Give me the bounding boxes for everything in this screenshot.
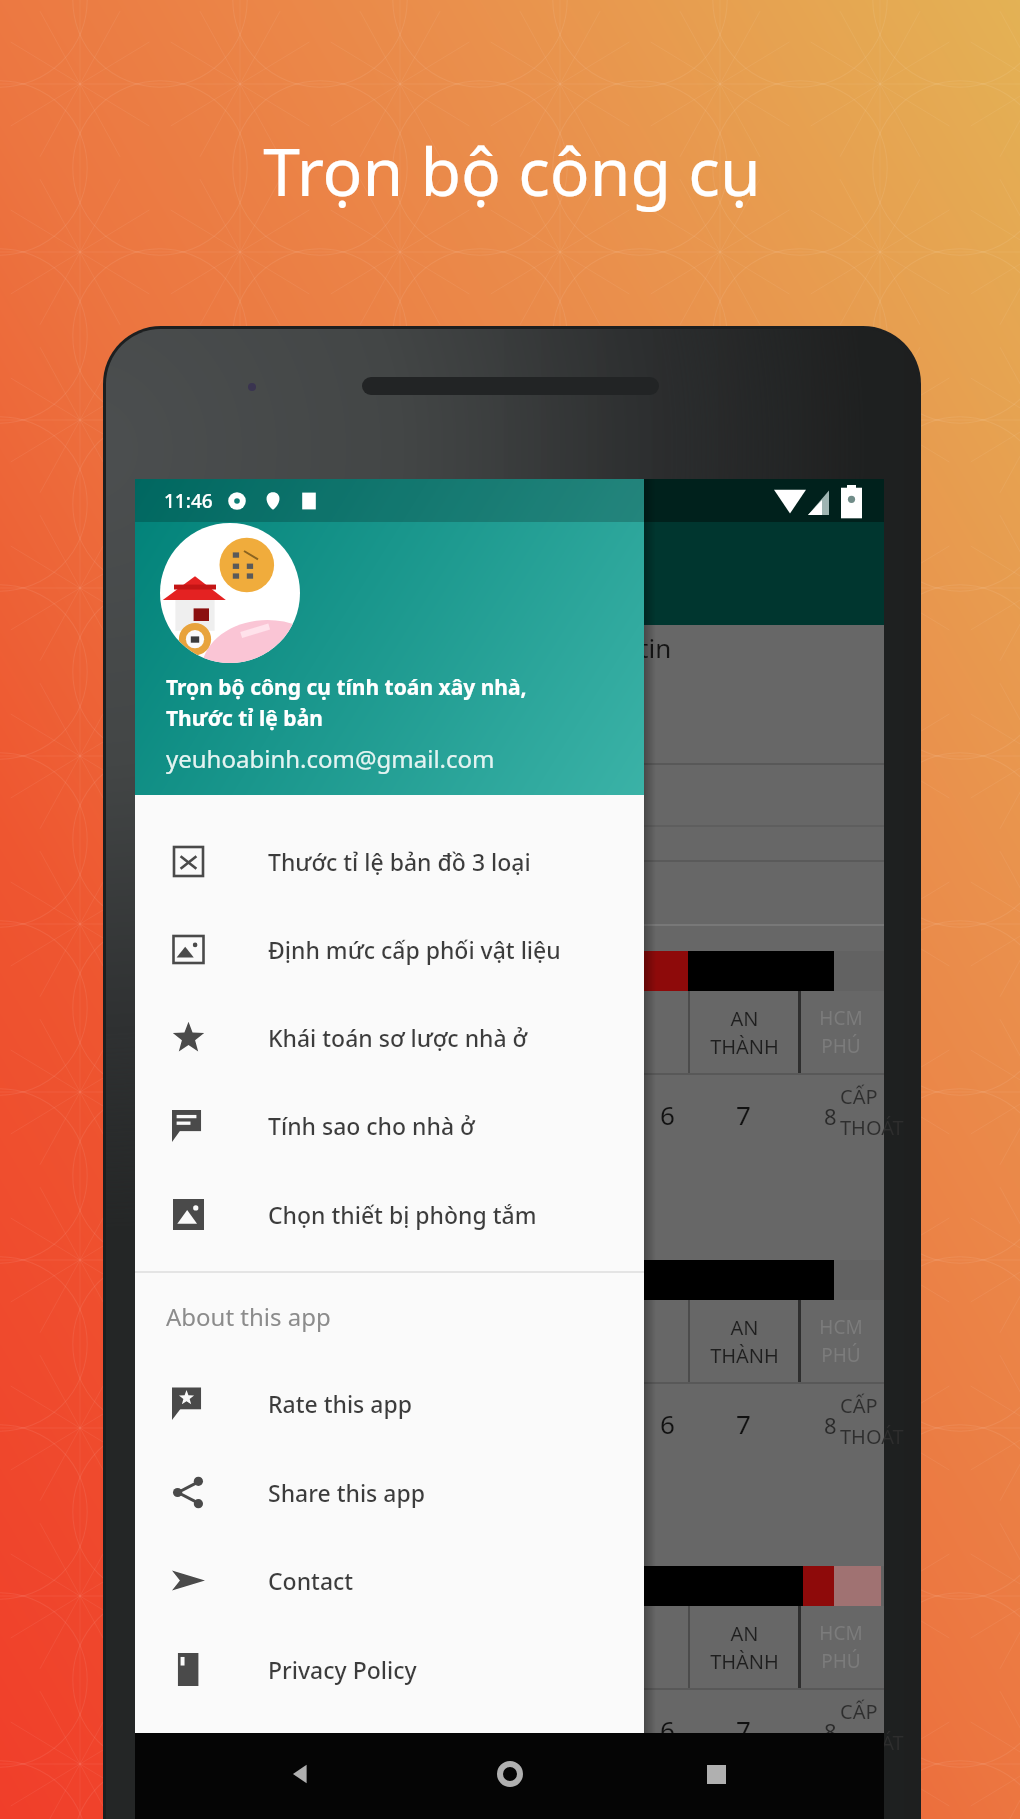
button[interactable]: Thước tỉ lệ bản đồ 3 loại [135, 817, 644, 905]
staticText: 8 [824, 1410, 837, 1440]
staticText: Thước tỉ lệ bản đồ 3 loại [268, 846, 531, 877]
staticText: CẤP THOÁT [840, 1698, 904, 1755]
staticText: yeuhoabinh.com@gmail.com [166, 742, 495, 775]
staticText: 6 [660, 1097, 675, 1132]
staticText: Contact [268, 1565, 354, 1596]
staticText: 6 [660, 1712, 675, 1747]
staticText: CTY CP [395, 1621, 429, 1674]
staticText: Khái toán sơ lược nhà ở [268, 1022, 528, 1053]
button[interactable]: Rate this app [135, 1359, 644, 1447]
staticText: Rate this app [268, 1388, 412, 1419]
button[interactable]: Contact [135, 1536, 644, 1624]
button[interactable]: Khái toán sơ lược nhà ở [135, 993, 644, 1081]
staticText: HCM PHÚ [819, 1005, 863, 1059]
button[interactable]: Share this app [135, 1448, 644, 1536]
staticText: AN THÀNH [710, 1620, 779, 1675]
button[interactable]: Privacy Policy [135, 1625, 644, 1713]
staticText: CTY CP [395, 1006, 429, 1059]
staticText: 6 [660, 1406, 675, 1441]
staticText: CẤP THOÁT [840, 1083, 904, 1140]
button[interactable]: Định mức cấp phối vật liệu [135, 905, 644, 993]
staticText: 8 [824, 1101, 837, 1131]
staticText: Bảng tra cứu thông tin [395, 630, 672, 665]
button[interactable]: Back [268, 1742, 332, 1806]
staticText: HCM PHÚ [819, 1314, 863, 1368]
button[interactable]: Home [478, 1742, 542, 1806]
staticText: 7 [736, 1097, 751, 1132]
staticText: 8 [824, 1716, 837, 1746]
staticText: HCM PHÚ [819, 1620, 863, 1674]
staticText: About this app [166, 1300, 331, 1333]
staticText: Chọn thiết bị phòng tắm [268, 1199, 537, 1230]
staticText: AN THÀNH [710, 1005, 779, 1060]
staticText: Định mức cấp phối vật liệu [268, 934, 561, 965]
staticText: CẤP THOÁT [840, 1392, 904, 1449]
staticText: Trọn bộ công cụ tính toán xây nhà, Thước… [166, 673, 527, 732]
staticText: Privacy Policy [268, 1654, 417, 1685]
staticText: Share this app [268, 1477, 425, 1508]
staticText: Trọn bộ công cụ [263, 125, 761, 215]
button[interactable]: Recents [684, 1742, 748, 1806]
staticText: Tính sao cho nhà ở [268, 1110, 475, 1141]
staticText: AN THÀNH [710, 1314, 779, 1369]
staticText: 7 [736, 1712, 751, 1747]
button[interactable]: Chọn thiết bị phòng tắm [135, 1170, 644, 1258]
button[interactable]: Tính sao cho nhà ở [135, 1081, 644, 1169]
staticText: 11:46 [164, 488, 213, 514]
staticText: 7 [736, 1406, 751, 1441]
